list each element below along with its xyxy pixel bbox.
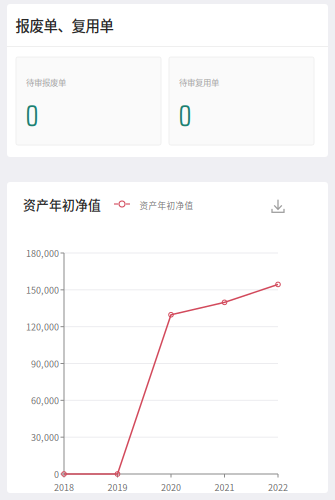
button[interactable]: 待审报废单 [16, 57, 161, 145]
button[interactable]: 下载 [268, 196, 288, 216]
staticText: 180,000 [26, 246, 59, 259]
staticText: 150,000 [26, 283, 59, 296]
staticText: 0 [26, 91, 39, 140]
staticText: 30,000 [31, 431, 59, 444]
staticText: 2018 [54, 480, 74, 493]
staticText: 报废单、复用单 [15, 14, 113, 35]
staticText: 90,000 [31, 357, 59, 370]
staticText: 60,000 [31, 394, 59, 407]
button[interactable]: 待审复用单 [169, 57, 314, 145]
staticText: 2021 [214, 480, 234, 493]
staticText: 2022 [268, 480, 288, 493]
staticText: 2019 [107, 480, 127, 493]
staticText: 资产年初净值 [23, 195, 101, 213]
staticText: 2020 [161, 480, 181, 493]
staticText: 待审报废单 [26, 76, 66, 88]
staticText: 120,000 [26, 320, 59, 333]
staticText: 待审复用单 [179, 76, 219, 88]
staticText: 资产年初净值 [139, 199, 193, 211]
staticText: 0 [179, 91, 192, 140]
staticText: 0 [54, 467, 59, 480]
